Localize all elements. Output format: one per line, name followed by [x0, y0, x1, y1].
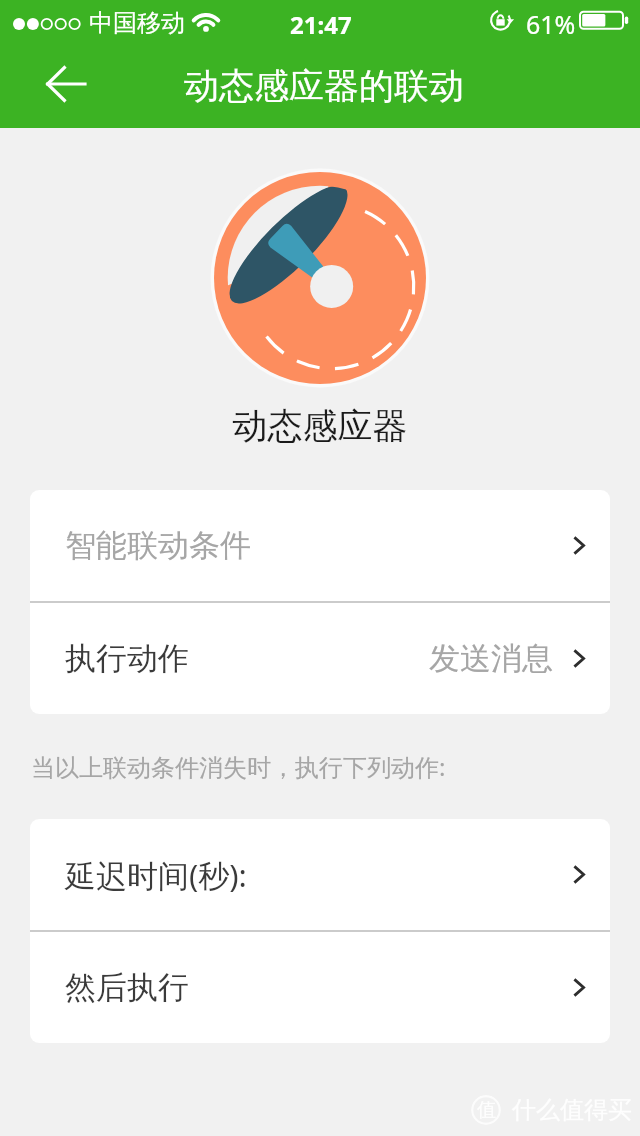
staticText: 21:47: [290, 8, 352, 41]
staticText: 值: [477, 1098, 496, 1122]
button[interactable]: 执行动作: [30, 603, 610, 714]
staticText: 动态感应器: [0, 404, 640, 448]
staticText: 智能联动条件: [65, 526, 251, 565]
staticText: 动态感应器的联动: [184, 64, 464, 108]
staticText: 什么值得买: [512, 1095, 632, 1125]
staticText: 发送消息: [429, 639, 553, 678]
button[interactable]: 然后执行: [30, 932, 610, 1043]
staticText: 执行动作: [65, 639, 189, 678]
staticText: 延迟时间(秒):: [65, 854, 247, 896]
button[interactable]: Back: [35, 52, 97, 116]
staticText: 当以上联动条件消失时，执行下列动作:: [31, 750, 446, 783]
staticText: 中国移动: [89, 8, 185, 38]
staticText: 然后执行: [65, 968, 189, 1007]
button[interactable]: 智能联动条件: [30, 490, 610, 601]
button[interactable]: 延迟时间(秒):: [30, 819, 610, 930]
staticText: 61%: [526, 7, 576, 41]
